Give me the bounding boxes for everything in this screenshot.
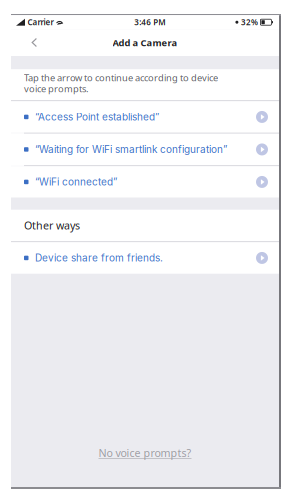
button[interactable]: Back	[11, 29, 50, 56]
button[interactable]: “Waiting for WiFi smartlink configuratio…	[11, 134, 279, 165]
staticText: 32%	[241, 17, 258, 27]
button[interactable]: Device share from friends.	[11, 242, 279, 274]
staticText: Other ways	[24, 218, 80, 233]
staticText: Device share from friends.	[35, 252, 163, 264]
staticText: 3:46 PM	[134, 17, 165, 27]
button[interactable]: “WiFi connected”	[11, 166, 279, 198]
button[interactable]: No voice prompts?	[88, 441, 201, 465]
button[interactable]: “Access Point established”	[11, 101, 279, 133]
staticText: Add a Camera	[112, 36, 177, 49]
staticText: No voice prompts?	[98, 446, 191, 460]
staticText: voice prompts.	[24, 82, 89, 95]
staticText: “WiFi connected”	[35, 176, 117, 188]
staticText: “Access Point established”	[35, 111, 159, 123]
staticText: Tap the arrow to continue according to d…	[24, 71, 218, 84]
staticText: Carrier	[27, 17, 53, 27]
staticText: “Waiting for WiFi smartlink configuratio…	[35, 143, 227, 155]
